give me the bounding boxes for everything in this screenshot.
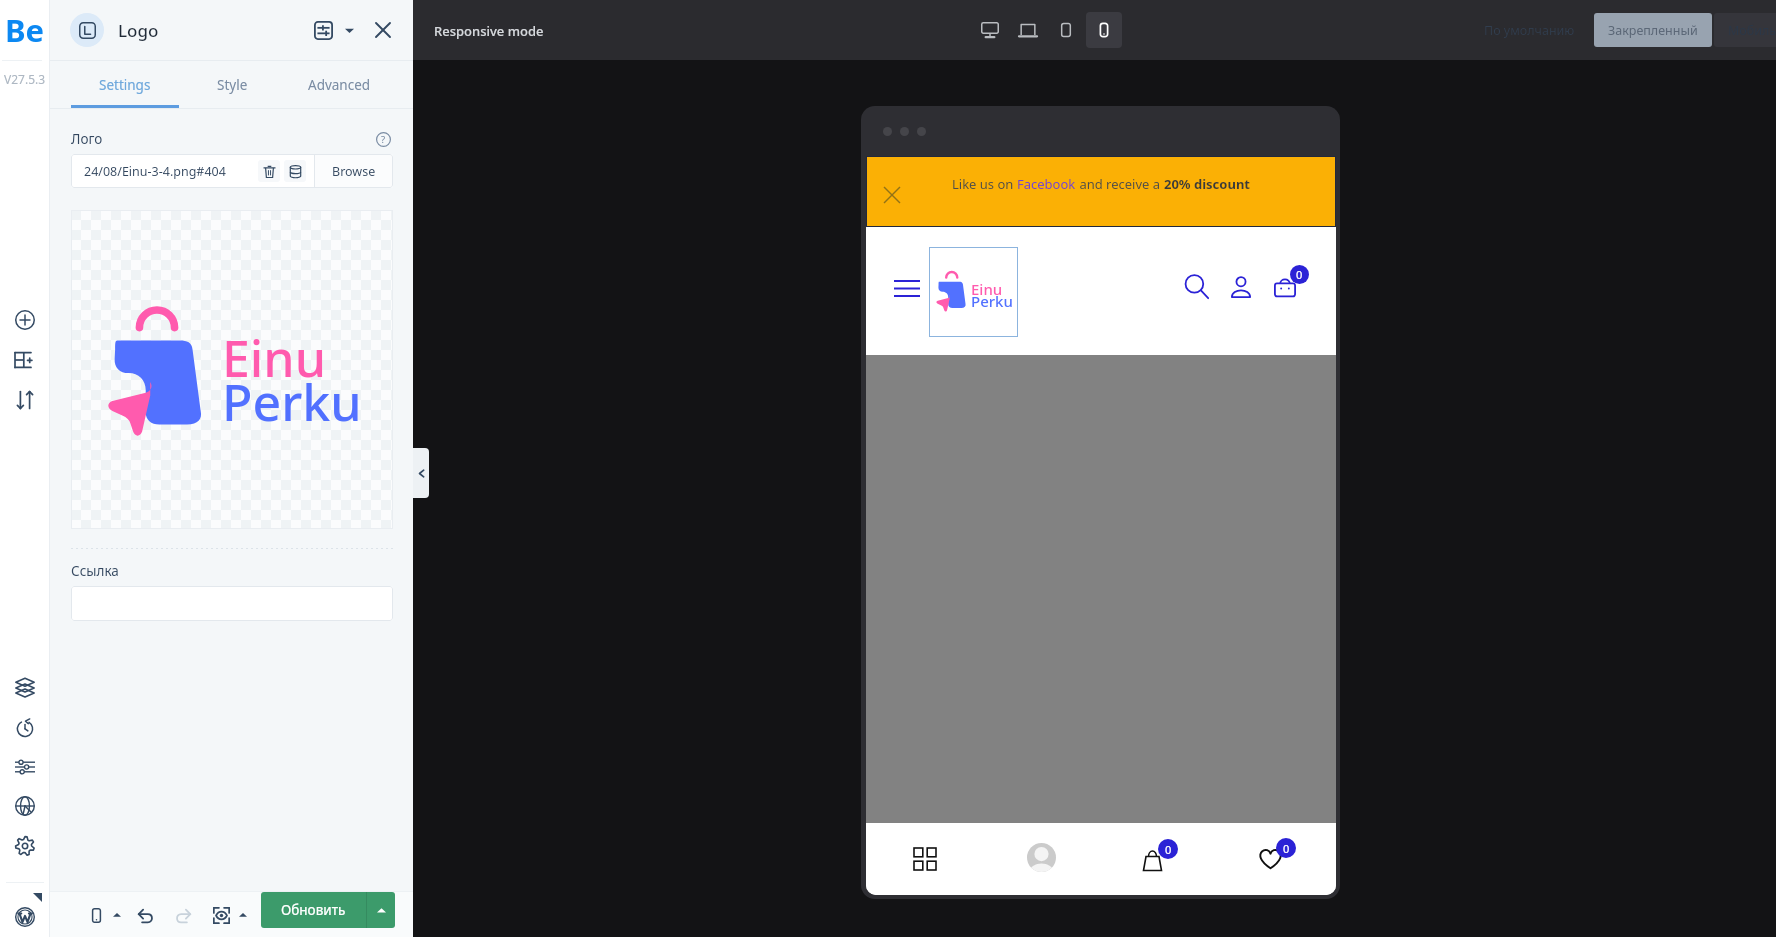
button[interactable]: Close banner — [877, 180, 907, 210]
button[interactable]: WordPress — [10, 902, 40, 932]
button[interactable]: Mobile view — [1086, 12, 1122, 48]
staticText: Advanced — [308, 76, 371, 94]
button[interactable]: Close — [369, 16, 397, 44]
button[interactable]: Help — [373, 129, 393, 149]
button[interactable]: Style — [179, 61, 286, 108]
button[interactable]: Advanced — [286, 61, 393, 108]
button[interactable]: Profile — [983, 823, 1100, 895]
button[interactable]: Закрепленный — [1594, 13, 1712, 47]
button[interactable]: Preview — [208, 902, 234, 928]
staticText: 0 — [1283, 841, 1290, 856]
button[interactable]: Laptop view — [1010, 12, 1046, 48]
button[interactable]: Delete image — [258, 160, 280, 182]
staticText: 20% discount — [1164, 175, 1250, 193]
button[interactable]: Undo — [132, 902, 158, 928]
staticText: Ссылка — [71, 562, 119, 580]
button[interactable]: Collapse panel — [413, 448, 429, 498]
button[interactable]: Menu — [893, 274, 921, 302]
staticText: Facebook — [1017, 175, 1076, 193]
button[interactable]: По умолчанию — [1481, 13, 1578, 47]
button[interactable]: Add element — [10, 305, 40, 335]
staticText: Browse — [332, 163, 376, 180]
staticText: Style — [217, 76, 248, 94]
button[interactable]: Wishlist — [1218, 823, 1336, 895]
button[interactable]: Globe — [10, 791, 40, 821]
staticText: 0 — [1165, 842, 1172, 857]
staticText: Мобильный — [1728, 22, 1776, 39]
button[interactable]: Browse — [315, 154, 393, 188]
staticText: Perku — [222, 368, 362, 436]
button[interactable]: Responsive mode — [84, 903, 108, 927]
staticText: Logo — [118, 19, 159, 42]
button[interactable]: Add section — [10, 345, 40, 375]
staticText: Like us on — [952, 175, 1017, 193]
button[interactable]: Account — [1225, 271, 1257, 303]
staticText: Закрепленный — [1608, 22, 1698, 39]
staticText: 0 — [1296, 267, 1303, 282]
button[interactable]: Panel layout options — [309, 16, 337, 44]
staticText: Settings — [99, 76, 151, 94]
staticText: Лого — [71, 130, 103, 148]
button[interactable]: Tablet view — [1048, 12, 1084, 48]
button[interactable]: Categories — [866, 823, 983, 895]
button[interactable]: Cart — [1267, 269, 1303, 305]
staticText: Perku — [971, 291, 1013, 311]
button[interactable]: Cart — [1100, 823, 1218, 895]
button[interactable]: Ссылка — [71, 586, 393, 621]
staticText: По умолчанию — [1484, 22, 1575, 39]
staticText: Be — [5, 9, 45, 51]
button[interactable]: History — [10, 712, 40, 742]
button[interactable]: Sliders — [10, 752, 40, 782]
staticText: Обновить — [281, 901, 346, 919]
button[interactable]: Redo — [170, 902, 196, 928]
button[interactable]: Desktop view — [972, 12, 1008, 48]
button[interactable]: More options — [339, 20, 359, 40]
staticText: Responsive mode — [434, 22, 544, 40]
button[interactable]: Layers — [10, 672, 40, 702]
button[interactable]: Search — [1181, 271, 1213, 303]
staticText: Einu — [971, 279, 1003, 299]
button[interactable]: Обновить — [261, 892, 395, 928]
staticText: 24/08/Einu-3-4.png#404 — [84, 163, 226, 180]
button[interactable]: Reorder — [10, 385, 40, 415]
button[interactable]: Settings — [71, 61, 179, 108]
button[interactable]: Settings — [10, 831, 40, 861]
staticText: V27.5.3 — [4, 71, 46, 87]
staticText: Einu — [222, 324, 327, 392]
staticText: and receive a — [1076, 175, 1164, 193]
staticText: ? — [381, 133, 386, 146]
button[interactable]: Media library — [284, 160, 306, 182]
